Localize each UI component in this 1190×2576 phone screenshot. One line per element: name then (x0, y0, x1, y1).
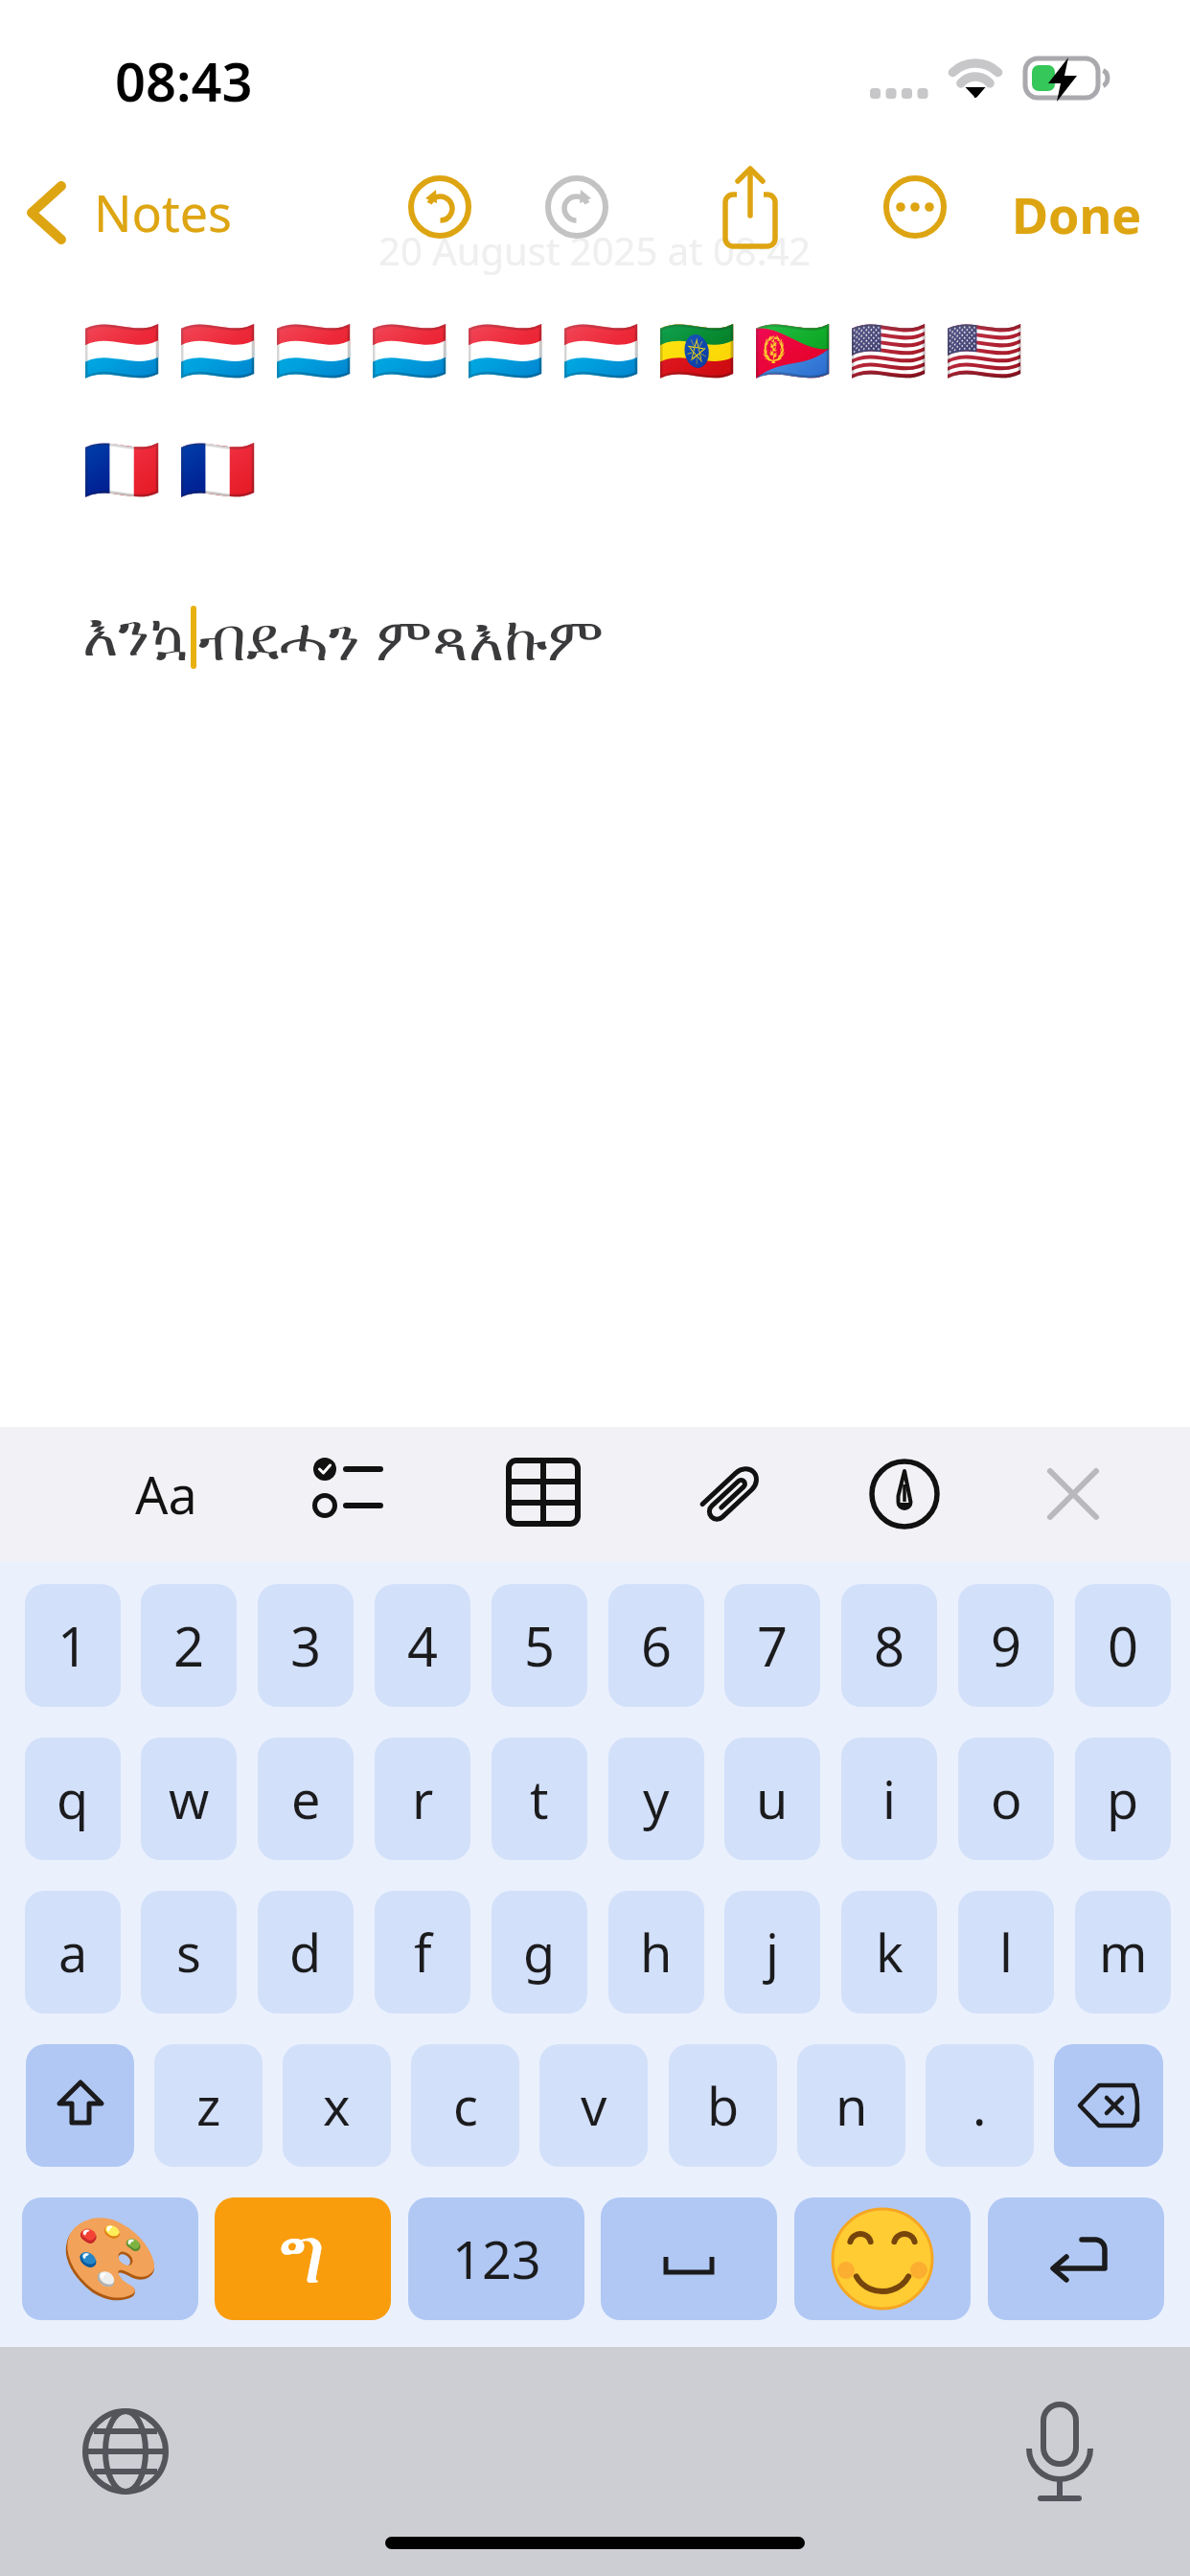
staticText: 🇪🇷 (753, 314, 833, 388)
staticText: n (835, 2070, 868, 2141)
button[interactable] (686, 1454, 772, 1536)
staticText: q (57, 1763, 89, 1834)
staticText: . (973, 2070, 987, 2141)
staticText: f (414, 1917, 432, 1988)
button[interactable]: b (669, 2044, 777, 2167)
staticText: b (707, 2070, 740, 2141)
button[interactable] (1044, 1467, 1102, 1521)
button[interactable]: c (411, 2044, 519, 2167)
button[interactable] (1054, 2044, 1163, 2167)
button[interactable]: 9 (958, 1584, 1054, 1707)
button[interactable] (988, 2197, 1164, 2320)
staticText: d (289, 1917, 322, 1988)
staticText: x (323, 2070, 351, 2141)
staticText: i (882, 1763, 896, 1834)
staticText: Aa (135, 1459, 197, 1529)
button[interactable]: m (1075, 1891, 1171, 2013)
button[interactable]: f (375, 1891, 470, 2013)
button[interactable] (311, 1456, 398, 1532)
button[interactable]: z (154, 2044, 263, 2167)
button[interactable]: a (25, 1891, 121, 2013)
button[interactable]: r (375, 1737, 470, 1860)
staticText: 🇫🇷 (82, 433, 162, 507)
button[interactable]: p (1075, 1737, 1171, 1860)
button[interactable]: 7 (724, 1584, 820, 1707)
button[interactable]: Aa (123, 1427, 209, 1561)
button[interactable]: s (141, 1891, 237, 2013)
button[interactable]: ግ (215, 2197, 391, 2320)
button[interactable]: j (724, 1891, 820, 2013)
button[interactable]: o (958, 1737, 1054, 1860)
button[interactable]: v (539, 2044, 648, 2167)
button[interactable]: d (258, 1891, 354, 2013)
button[interactable]: 6 (608, 1584, 704, 1707)
button[interactable]: 0 (1075, 1584, 1171, 1707)
button[interactable]: 123 (408, 2197, 584, 2320)
staticText: z (196, 2070, 221, 2141)
button[interactable]: 2 (141, 1584, 237, 1707)
staticText: 8 (874, 1609, 905, 1682)
button[interactable]: k (841, 1891, 937, 2013)
staticText: u (756, 1763, 789, 1834)
button[interactable]: h (608, 1891, 704, 2013)
button[interactable] (601, 2197, 777, 2320)
button[interactable] (545, 175, 608, 239)
staticText: v (581, 2070, 607, 2141)
staticText: 🇺🇸 (945, 314, 1024, 388)
button[interactable] (883, 175, 947, 239)
staticText: ግ (280, 2219, 326, 2298)
staticText: 🇫🇷 (178, 433, 258, 507)
staticText: 🇱🇺 (82, 314, 162, 388)
staticText: Notes (94, 178, 232, 246)
staticText: 🇱🇺 (466, 314, 545, 388)
button[interactable]: e (258, 1737, 354, 1860)
button[interactable]: u (724, 1737, 820, 1860)
button[interactable]: 8 (841, 1584, 937, 1707)
button[interactable]: 4 (375, 1584, 470, 1707)
staticText: 🇺🇸 (849, 314, 928, 388)
button[interactable]: Done (1012, 180, 1142, 248)
button[interactable] (408, 175, 471, 239)
button[interactable] (868, 1458, 941, 1530)
button[interactable]: t (492, 1737, 587, 1860)
staticText: l (999, 1917, 1013, 1988)
staticText: h (640, 1917, 673, 1988)
button[interactable]: x (283, 2044, 391, 2167)
staticText: 1 (57, 1609, 89, 1682)
staticText: 08:43 (115, 44, 253, 117)
staticText: 🇱🇺 (561, 314, 641, 388)
button[interactable]: w (141, 1737, 237, 1860)
button[interactable]: l (958, 1891, 1054, 2013)
staticText: 🎨 (60, 2212, 161, 2306)
button[interactable]: 5 (492, 1584, 587, 1707)
button[interactable]: i (841, 1737, 937, 1860)
button[interactable]: y (608, 1737, 704, 1860)
staticText: m (1099, 1917, 1148, 1988)
button[interactable] (721, 163, 778, 251)
staticText: 5 (524, 1609, 556, 1682)
staticText: 9 (991, 1609, 1022, 1682)
staticText: y (643, 1763, 670, 1834)
staticText: e (291, 1763, 321, 1834)
button[interactable]: 1 (25, 1584, 121, 1707)
button[interactable]: g (492, 1891, 587, 2013)
button[interactable] (1018, 2401, 1102, 2514)
button[interactable] (506, 1458, 583, 1530)
button[interactable]: 3 (258, 1584, 354, 1707)
button[interactable] (794, 2197, 971, 2320)
staticText: እንኳ (82, 608, 189, 668)
staticText: 123 (452, 2223, 541, 2294)
staticText: a (58, 1917, 88, 1988)
button[interactable]: Notes (25, 178, 232, 246)
button[interactable]: 🎨 (22, 2197, 198, 2320)
button[interactable] (82, 2408, 169, 2495)
staticText: 🇱🇺 (178, 314, 258, 388)
staticText: g (523, 1917, 556, 1988)
button[interactable]: . (926, 2044, 1034, 2167)
button[interactable] (26, 2044, 134, 2167)
staticText: 2 (173, 1609, 205, 1682)
button[interactable]: n (797, 2044, 905, 2167)
staticText: 7 (757, 1609, 789, 1682)
staticText: 20 August 2025 at 08:42 (378, 224, 812, 276)
button[interactable]: q (25, 1737, 121, 1860)
